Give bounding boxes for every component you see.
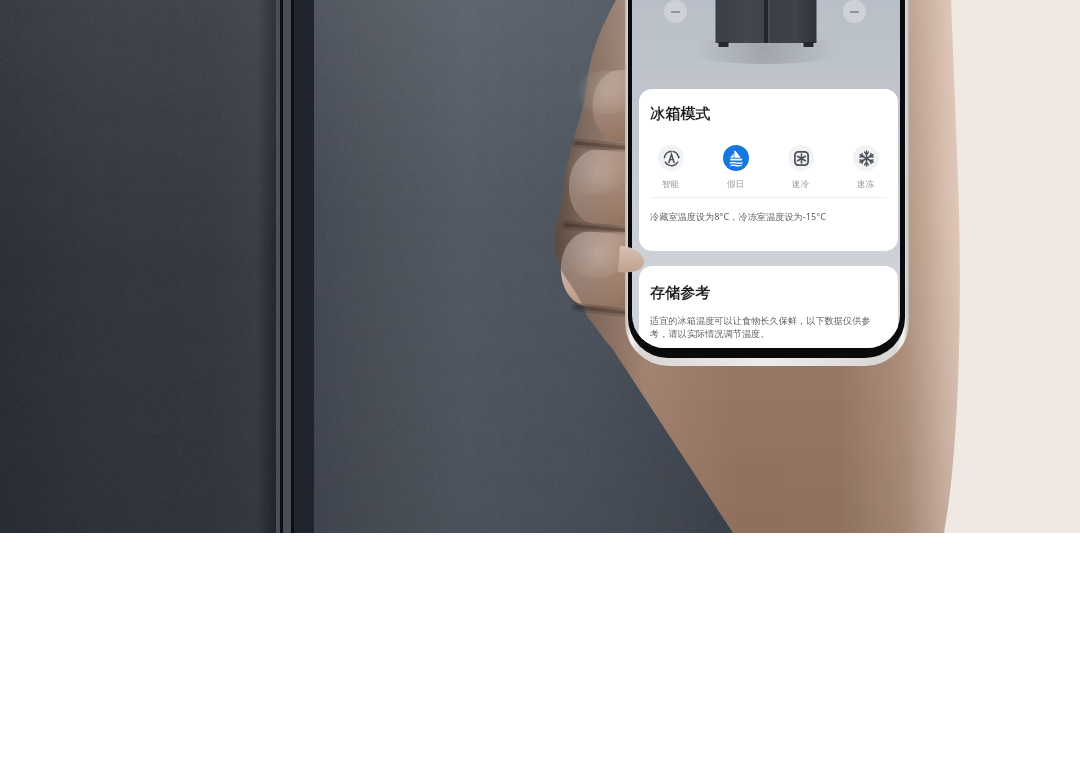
staticText: 适宜的冰箱温度可以让食物长久保鲜，以下数据仅供参考，请以实际情况调节温度。 [650,315,886,340]
button[interactable]: Decrease temperature [664,0,687,23]
staticText: 冰箱模式 [650,105,710,124]
button[interactable]: 假日 [703,145,768,190]
staticText: 速冻 [857,179,875,190]
staticText: 假日 [727,179,745,190]
staticText: 智能 [662,179,680,190]
button[interactable]: 速冻 [833,145,898,190]
staticText: 存储参考 [650,284,710,303]
staticText: 冷藏室温度设为8°C，冷冻室温度设为-15°C [650,210,827,223]
button[interactable]: 智能 [639,145,703,190]
button[interactable]: 速冷 [768,145,833,190]
button[interactable]: Decrease temperature [843,0,866,23]
staticText: 速冷 [792,179,810,190]
